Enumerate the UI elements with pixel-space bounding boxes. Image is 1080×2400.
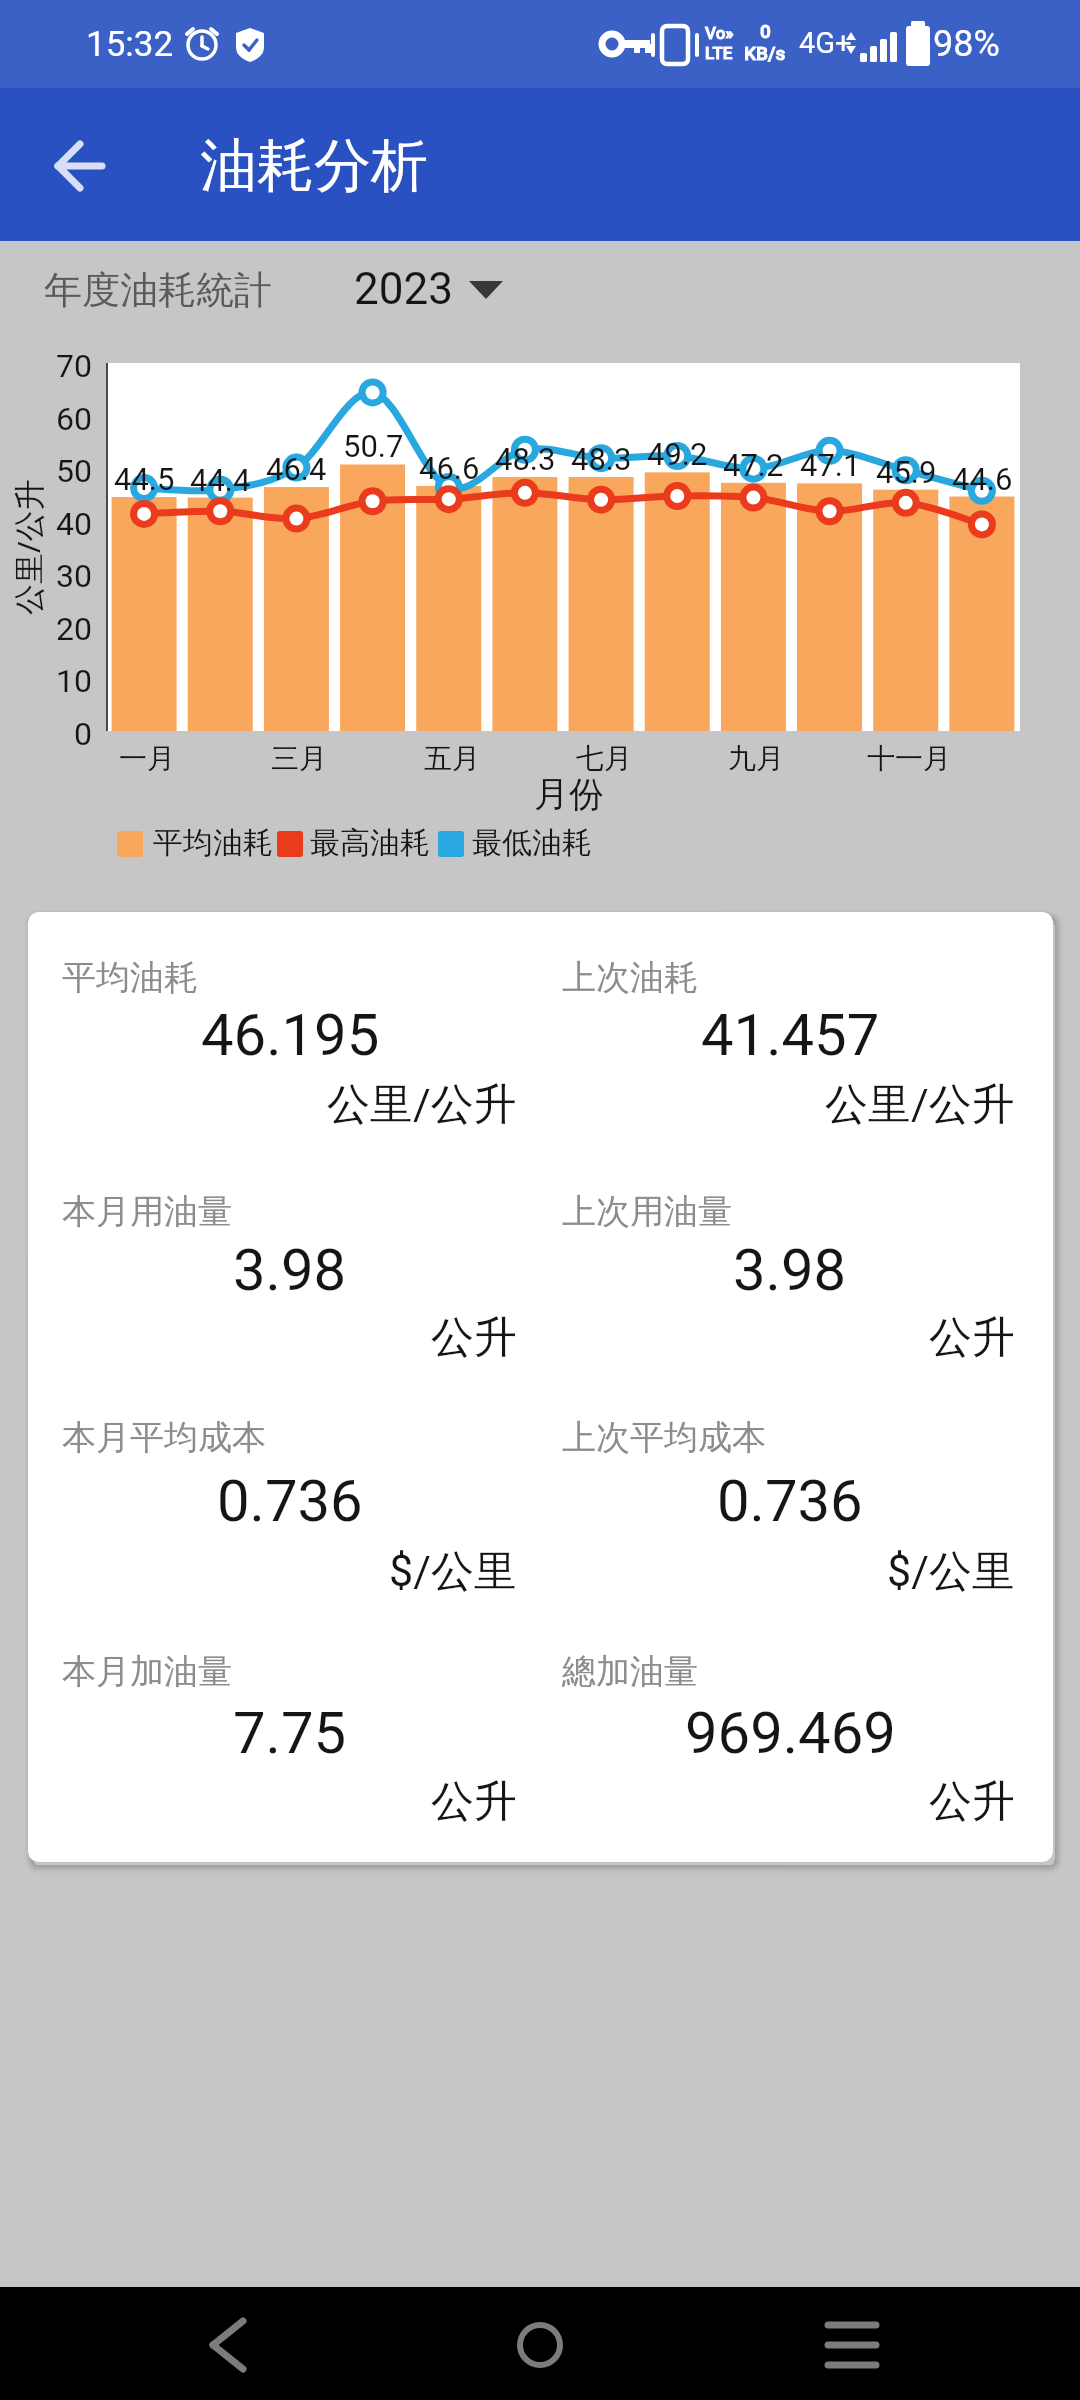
- staticText: 公里/公升: [327, 1078, 517, 1132]
- staticText: 三月: [271, 741, 327, 776]
- staticText: 70: [56, 347, 92, 385]
- button[interactable]: [472, 2297, 608, 2392]
- staticText: 五月: [424, 741, 480, 776]
- staticText: 50.7: [343, 428, 404, 464]
- staticText: 上次平均成本: [562, 1416, 766, 1459]
- staticText: 公升: [431, 1311, 517, 1365]
- staticText: 44.4: [190, 462, 251, 498]
- staticText: 本月加油量: [62, 1650, 232, 1693]
- staticText: 60: [56, 400, 92, 438]
- staticText: 本月平均成本: [62, 1416, 266, 1459]
- staticText: 3.98: [233, 1236, 347, 1304]
- staticText: 一月: [119, 741, 175, 776]
- button[interactable]: [30, 116, 130, 216]
- staticText: 20: [56, 610, 92, 648]
- staticText: 46.6: [419, 450, 480, 486]
- staticText: 7.75: [233, 1699, 347, 1767]
- staticText: 九月: [728, 741, 784, 776]
- staticText: 十一月: [867, 741, 951, 776]
- staticText: $/公里: [389, 1545, 517, 1599]
- staticText: 47.1: [800, 447, 861, 483]
- staticText: 總加油量: [562, 1650, 698, 1693]
- staticText: Vo»: [705, 23, 734, 43]
- staticText: 上次用油量: [562, 1190, 732, 1233]
- staticText: 41.457: [701, 1001, 880, 1069]
- staticText: 49.2: [647, 436, 708, 472]
- staticText: 最低油耗: [472, 824, 592, 862]
- staticText: 4G+: [799, 26, 852, 60]
- staticText: 10: [56, 662, 92, 700]
- staticText: 44.6: [952, 461, 1013, 497]
- staticText: 48.3: [571, 441, 632, 477]
- staticText: 2023: [354, 263, 453, 315]
- staticText: 上次油耗: [562, 956, 698, 999]
- staticText: 40: [56, 505, 92, 543]
- staticText: 46.4: [266, 451, 327, 487]
- staticText: 0: [74, 715, 92, 753]
- staticText: 最高油耗: [310, 824, 430, 862]
- staticText: 七月: [576, 741, 632, 776]
- staticText: 公里/公升: [7, 479, 49, 615]
- staticText: $/公里: [887, 1545, 1015, 1599]
- staticText: 30: [56, 557, 92, 595]
- staticText: 0.736: [717, 1467, 863, 1535]
- button[interactable]: [160, 2297, 296, 2392]
- staticText: 50: [56, 452, 92, 490]
- staticText: 公升: [431, 1775, 517, 1829]
- staticText: 平均油耗: [62, 956, 198, 999]
- staticText: 44.5: [114, 461, 175, 497]
- staticText: 0: [760, 20, 771, 42]
- staticText: 月份: [534, 772, 604, 816]
- staticText: 98%: [933, 23, 1000, 65]
- staticText: 油耗分析: [200, 130, 428, 202]
- staticText: 15:32: [86, 24, 174, 65]
- staticText: 年度油耗統計: [44, 266, 272, 314]
- staticText: 平均油耗: [153, 824, 273, 862]
- staticText: LTE: [705, 43, 733, 63]
- staticText: 公升: [929, 1775, 1015, 1829]
- staticText: 45.9: [876, 454, 937, 490]
- staticText: 969.469: [685, 1699, 896, 1767]
- staticText: KB/s: [744, 42, 786, 64]
- staticText: 本月用油量: [62, 1190, 232, 1233]
- button[interactable]: [784, 2297, 920, 2392]
- staticText: 3.98: [733, 1236, 847, 1304]
- staticText: 46.195: [201, 1001, 380, 1069]
- staticText: 48.3: [495, 441, 556, 477]
- staticText: 47.2: [723, 447, 784, 483]
- staticText: 公里/公升: [825, 1078, 1015, 1132]
- staticText: 0.736: [217, 1467, 363, 1535]
- button[interactable]: [330, 255, 530, 325]
- staticText: 公升: [929, 1311, 1015, 1365]
